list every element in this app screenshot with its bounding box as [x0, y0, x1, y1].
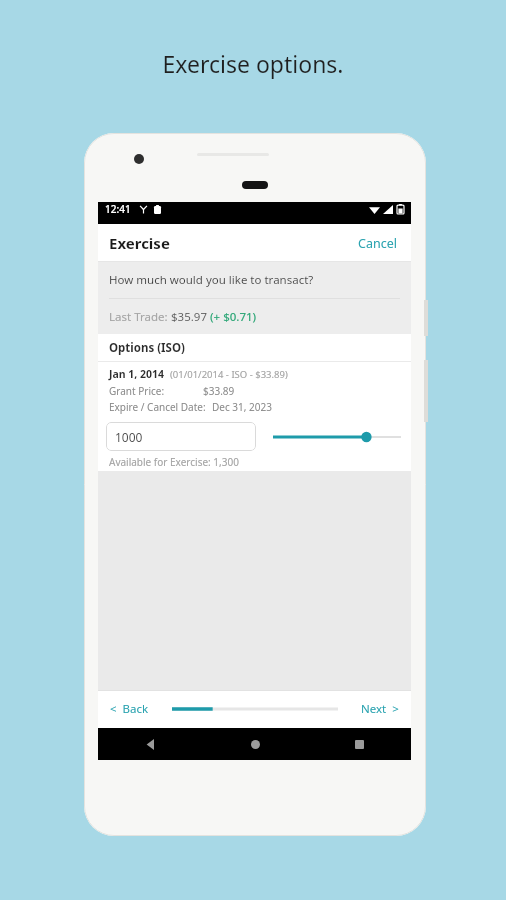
staticText: (+ $0.71) — [210, 309, 257, 325]
staticText: Expire / Cancel Date: — [109, 400, 206, 414]
button[interactable]: Home — [203, 728, 307, 760]
staticText: Jan 1, 2014 — [109, 367, 165, 381]
staticText: 1000 — [115, 429, 143, 445]
button[interactable]: < Back — [107, 696, 152, 722]
staticText: Exercise — [109, 233, 170, 253]
button[interactable]: Back — [98, 728, 203, 760]
button[interactable]: Cancel — [355, 231, 400, 256]
staticText: Last Trade: — [109, 309, 171, 325]
staticText: < Back — [110, 701, 149, 717]
staticText: Cancel — [358, 235, 397, 252]
staticText: Exercise options. — [162, 48, 344, 79]
staticText: Dec 31, 2023 — [212, 400, 272, 414]
button[interactable]: Next > — [358, 696, 402, 722]
staticText: Available for Exercise: 1,300 — [109, 455, 239, 469]
staticText: (01/01/2014 - ISO - $33.89) — [170, 368, 288, 381]
staticText: Grant Price: — [109, 384, 165, 398]
staticText: $35.97 — [171, 309, 210, 325]
staticText: Next > — [361, 701, 399, 717]
staticText: Options (ISO) — [109, 340, 185, 356]
staticText: How much would you like to transact? — [109, 272, 314, 288]
button[interactable]: Quantity slider — [273, 425, 401, 449]
button[interactable]: Recent apps — [307, 728, 411, 760]
button[interactable]: 1000 — [106, 422, 256, 451]
staticText: $33.89 — [203, 384, 235, 398]
staticText: 12:41 — [105, 202, 131, 216]
